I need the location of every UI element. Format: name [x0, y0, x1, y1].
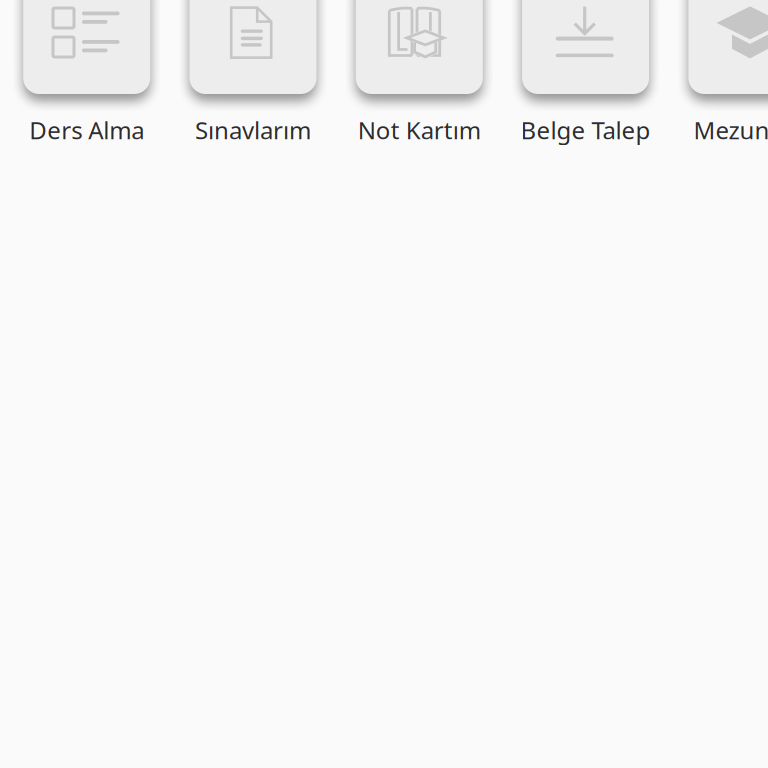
- button[interactable]: Sınavlarım: [189, 0, 316, 148]
- button[interactable]: Belge Talep: [522, 0, 649, 148]
- staticText: Not Kartım: [358, 114, 481, 146]
- staticText: Belge Talep: [521, 114, 651, 146]
- button[interactable]: Not Kartım: [356, 0, 483, 148]
- staticText: Ders Alma: [29, 114, 144, 146]
- staticText: Mezuniyet: [693, 114, 768, 146]
- button[interactable]: Mezuniyet: [688, 0, 768, 148]
- staticText: Sınavlarım: [195, 114, 311, 146]
- button[interactable]: Ders Alma: [23, 0, 150, 148]
